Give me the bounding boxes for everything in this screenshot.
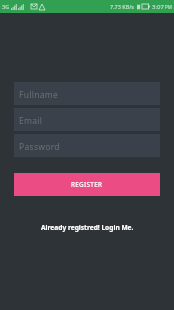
other: Warning [39,4,45,10]
staticText: PM [165,4,172,10]
staticText: 7.73 KB/s [110,3,135,10]
staticText: 3:07 [152,3,164,11]
other: Battery [142,4,150,9]
other: Vibrate mode [137,4,141,10]
staticText: REGISTER [71,180,103,189]
button[interactable]: Password [14,134,160,157]
staticText: Email [19,115,43,127]
button[interactable]: Email [14,108,160,131]
staticText: 3G [2,3,10,10]
staticText: Already registred! Login Me. [41,223,134,232]
other: Signal strength [18,4,24,10]
other: Signal strength [11,4,17,10]
button[interactable]: Fullname [14,82,160,105]
button[interactable]: Already registred! Login Me. [0,220,174,234]
staticText: Fullname [19,89,59,101]
staticText: Password [19,141,60,153]
other: Unread message [31,4,37,9]
button[interactable]: REGISTER [14,173,160,196]
